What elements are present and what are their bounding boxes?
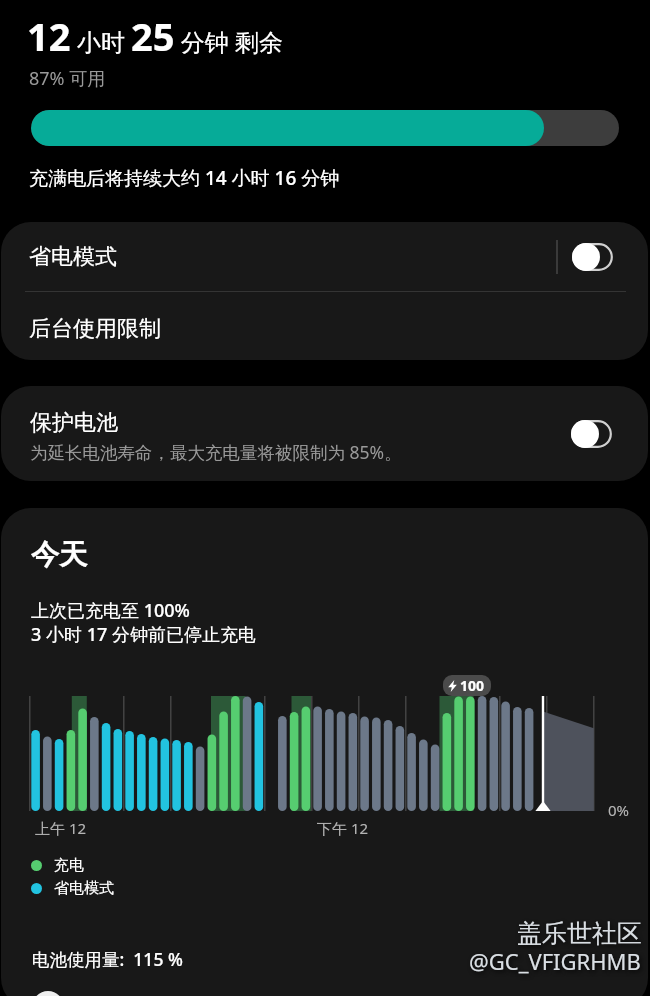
- button[interactable]: 后台使用限制: [1, 295, 648, 360]
- button[interactable]: 省电模式: [1, 222, 648, 291]
- staticText: 下午 12: [317, 818, 369, 838]
- button[interactable]: 省电模式: [572, 243, 613, 271]
- staticText: 后台使用限制: [29, 315, 161, 343]
- staticText: 充满电后将持续大约 14 小时 16 分钟: [29, 165, 340, 191]
- staticText: @GC_VFIGRHMB: [469, 946, 641, 976]
- staticText: 上次已充电至 100%: [31, 598, 190, 623]
- button[interactable]: 充电: [31, 856, 84, 875]
- button[interactable]: 保护电池: [1, 386, 648, 481]
- staticText: 省电模式: [54, 879, 114, 898]
- staticText: 省电模式: [29, 243, 117, 271]
- button[interactable]: 省电模式: [31, 879, 114, 898]
- staticText: 保护电池: [30, 409, 118, 437]
- staticText: 电池使用量: 115 %: [32, 947, 183, 971]
- staticText: 87% 可用: [29, 66, 106, 91]
- staticText: 100: [460, 676, 485, 695]
- staticText: 为延长电池寿命，最大充电量将被限制为 85%。: [30, 440, 402, 464]
- button[interactable]: Charged to 100 percent: [448, 676, 485, 695]
- staticText: 3 小时 17 分钟前已停止充电: [31, 622, 256, 647]
- staticText: 上午 12: [35, 818, 87, 838]
- staticText: 12 小时 25 分钟 剩余: [27, 10, 283, 62]
- staticText: 今天: [31, 537, 87, 572]
- staticText: 0%: [608, 800, 630, 820]
- staticText: 盖乐世社区: [517, 918, 642, 949]
- staticText: 充电: [54, 856, 84, 875]
- button[interactable]: 保护电池: [571, 420, 612, 448]
